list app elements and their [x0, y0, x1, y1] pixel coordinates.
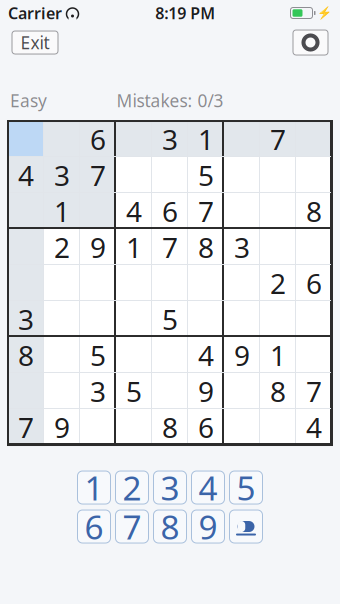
button[interactable]: 4	[188, 337, 224, 373]
button[interactable]	[80, 301, 116, 337]
button[interactable]	[260, 229, 296, 265]
button[interactable]	[116, 265, 152, 301]
button[interactable]: 1	[260, 337, 296, 373]
button[interactable]: 9	[224, 337, 260, 373]
button[interactable]	[296, 157, 332, 193]
button[interactable]	[260, 193, 296, 229]
button[interactable]	[80, 409, 116, 445]
button[interactable]: 3	[8, 301, 44, 337]
button[interactable]	[224, 373, 260, 409]
button[interactable]: Erase	[229, 510, 262, 543]
button[interactable]: 8	[188, 229, 224, 265]
button[interactable]	[224, 409, 260, 445]
button[interactable]	[296, 301, 332, 337]
button[interactable]: 4	[116, 193, 152, 229]
button[interactable]	[152, 373, 188, 409]
button[interactable]	[44, 265, 80, 301]
button[interactable]: 8	[152, 409, 188, 445]
button[interactable]: 9	[80, 229, 116, 265]
button[interactable]: 3	[152, 121, 188, 157]
button[interactable]	[224, 301, 260, 337]
button[interactable]	[260, 157, 296, 193]
staticText: 6	[198, 408, 214, 446]
button[interactable]: 6	[152, 193, 188, 229]
button[interactable]: 7	[8, 409, 44, 445]
button[interactable]: 5	[152, 301, 188, 337]
button[interactable]	[224, 157, 260, 193]
button[interactable]: 8	[153, 510, 186, 543]
button[interactable]	[296, 121, 332, 157]
button[interactable]	[8, 373, 44, 409]
button[interactable]: 1	[44, 193, 80, 229]
button[interactable]	[260, 301, 296, 337]
button[interactable]: 7	[260, 121, 296, 157]
button[interactable]: Exit	[12, 31, 58, 54]
button[interactable]: 3	[224, 229, 260, 265]
button[interactable]: 7	[296, 373, 332, 409]
button[interactable]	[296, 229, 332, 265]
button[interactable]	[44, 121, 80, 157]
button[interactable]	[152, 265, 188, 301]
staticText: 8	[270, 372, 286, 410]
button[interactable]: 7	[152, 229, 188, 265]
button[interactable]: 8	[260, 373, 296, 409]
button[interactable]	[44, 337, 80, 373]
button[interactable]	[8, 193, 44, 229]
button[interactable]: 2	[260, 265, 296, 301]
button[interactable]: 2	[44, 229, 80, 265]
button[interactable]: 5	[229, 471, 262, 504]
staticText: Mistakes: 0/3	[116, 89, 223, 112]
button[interactable]	[44, 301, 80, 337]
button[interactable]: 3	[44, 157, 80, 193]
staticText: 3	[160, 465, 179, 510]
button[interactable]: 3	[80, 373, 116, 409]
button[interactable]: 1	[188, 121, 224, 157]
button[interactable]: 2	[115, 471, 148, 504]
button[interactable]: 1	[116, 229, 152, 265]
button[interactable]: Settings	[293, 30, 328, 55]
button[interactable]: 6	[188, 409, 224, 445]
button[interactable]: 8	[296, 193, 332, 229]
button[interactable]: 3	[153, 471, 186, 504]
button[interactable]	[260, 409, 296, 445]
button[interactable]: 4	[296, 409, 332, 445]
button[interactable]: 5	[116, 373, 152, 409]
button[interactable]: 9	[188, 373, 224, 409]
staticText: 1	[198, 120, 214, 158]
button[interactable]: 6	[77, 510, 110, 543]
button[interactable]: 1	[77, 471, 110, 504]
button[interactable]	[116, 157, 152, 193]
button[interactable]: 7	[115, 510, 148, 543]
button[interactable]: 5	[80, 337, 116, 373]
button[interactable]	[80, 265, 116, 301]
button[interactable]: 9	[44, 409, 80, 445]
button[interactable]	[116, 121, 152, 157]
button[interactable]: 4	[191, 471, 224, 504]
button[interactable]	[8, 229, 44, 265]
button[interactable]	[224, 265, 260, 301]
button[interactable]	[224, 121, 260, 157]
button[interactable]	[152, 337, 188, 373]
button[interactable]	[8, 121, 44, 157]
button[interactable]	[188, 301, 224, 337]
button[interactable]: 9	[191, 510, 224, 543]
button[interactable]	[8, 265, 44, 301]
button[interactable]: 6	[80, 121, 116, 157]
button[interactable]	[80, 193, 116, 229]
button[interactable]	[224, 193, 260, 229]
button[interactable]: 6	[296, 265, 332, 301]
staticText: 1	[84, 465, 103, 510]
button[interactable]	[44, 373, 80, 409]
button[interactable]	[296, 337, 332, 373]
button[interactable]	[116, 409, 152, 445]
staticText: 8	[198, 228, 214, 266]
button[interactable]: 8	[8, 337, 44, 373]
button[interactable]: 5	[188, 157, 224, 193]
button[interactable]	[116, 301, 152, 337]
button[interactable]: 4	[8, 157, 44, 193]
button[interactable]: 7	[188, 193, 224, 229]
button[interactable]	[188, 265, 224, 301]
button[interactable]: 7	[80, 157, 116, 193]
button[interactable]	[116, 337, 152, 373]
button[interactable]	[152, 157, 188, 193]
